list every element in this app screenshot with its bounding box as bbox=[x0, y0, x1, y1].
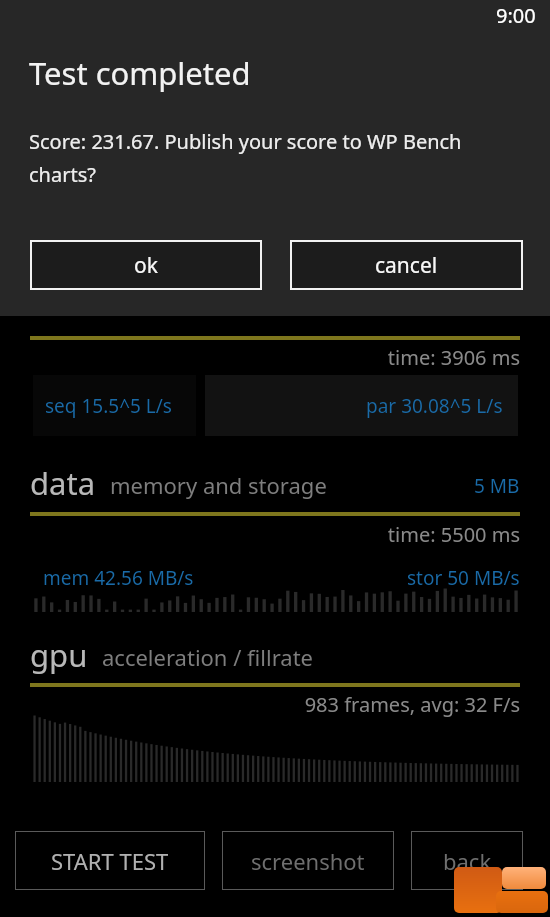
staticText: 5 MB bbox=[474, 473, 520, 499]
staticText: screenshot bbox=[251, 846, 365, 876]
staticText: Score: 231.67. Publish your score to WP … bbox=[29, 128, 499, 188]
staticText: gpu bbox=[30, 634, 88, 676]
button[interactable]: START TEST bbox=[15, 831, 205, 890]
button[interactable]: back bbox=[411, 831, 523, 890]
staticText: 9:00 bbox=[496, 2, 536, 29]
button[interactable]: cancel bbox=[290, 240, 523, 290]
staticText: ok bbox=[134, 251, 158, 280]
button[interactable]: screenshot bbox=[222, 831, 394, 890]
staticText: stor 50 MB/s bbox=[407, 565, 520, 591]
staticText: seq 15.5^5 L/s bbox=[45, 393, 172, 419]
staticText: memory and storage bbox=[110, 470, 327, 500]
staticText: 983 frames, avg: 32 F/s bbox=[30, 691, 520, 718]
staticText: data bbox=[30, 462, 96, 504]
button[interactable]: ok bbox=[30, 240, 262, 290]
staticText: time: 5500 ms bbox=[30, 521, 520, 548]
button[interactable]: par 30.08^5 L/s bbox=[205, 375, 518, 436]
staticText: cancel bbox=[375, 251, 438, 280]
staticText: par 30.08^5 L/s bbox=[366, 393, 503, 419]
staticText: START TEST bbox=[51, 846, 169, 876]
staticText: acceleration / fillrate bbox=[102, 642, 314, 672]
staticText: Test completed bbox=[29, 52, 251, 94]
staticText: time: 3906 ms bbox=[30, 344, 520, 371]
staticText: back bbox=[443, 846, 492, 876]
staticText: mem 42.56 MB/s bbox=[43, 565, 194, 591]
other: Legit Reviews logo bbox=[446, 861, 550, 917]
button[interactable]: seq 15.5^5 L/s bbox=[33, 375, 196, 436]
